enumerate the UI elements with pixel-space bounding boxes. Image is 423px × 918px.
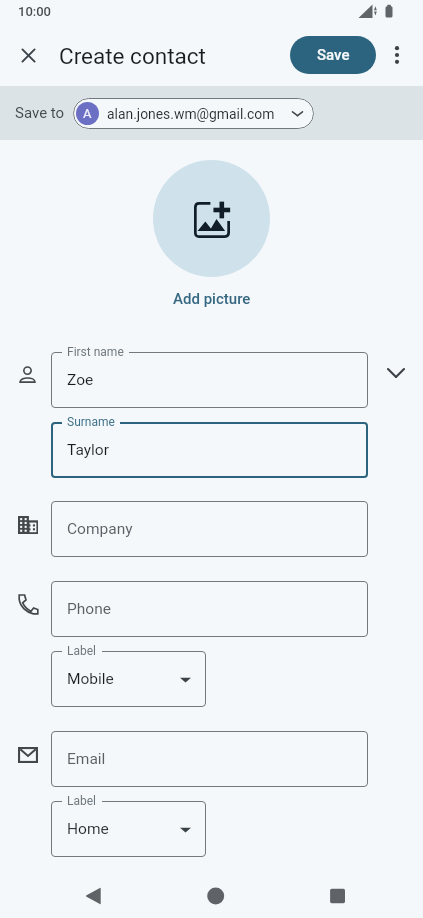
button[interactable]: Add picture (173, 290, 251, 308)
button[interactable]: More options (378, 36, 416, 74)
staticText: First name (67, 345, 124, 359)
staticText: Surname (67, 415, 115, 429)
button[interactable]: Expand name fields (377, 354, 415, 392)
staticText: Save to (15, 104, 65, 122)
button[interactable]: Back (72, 870, 116, 918)
staticText: Home (67, 820, 109, 838)
button[interactable]: A (73, 98, 314, 129)
button[interactable] (51, 651, 206, 707)
staticText: Zoe (67, 371, 94, 389)
staticText: alan.jones.wm@gmail.com (107, 106, 275, 122)
button[interactable]: Close (9, 36, 47, 74)
staticText: Label (67, 794, 97, 808)
staticText: A (83, 106, 92, 121)
staticText: Label (67, 644, 97, 658)
button[interactable]: Add picture (153, 160, 270, 277)
staticText: 10:00 (18, 4, 52, 19)
staticText: Save (317, 46, 350, 64)
staticText: Company (67, 520, 133, 538)
staticText: Email (67, 750, 106, 768)
button[interactable] (51, 801, 206, 857)
staticText: Taylor (67, 441, 109, 459)
button[interactable]: Save (290, 36, 376, 74)
staticText: Phone (67, 600, 111, 618)
staticText: Mobile (67, 670, 114, 688)
button[interactable] (51, 422, 368, 478)
button[interactable] (51, 581, 368, 637)
button[interactable]: Recent apps (316, 870, 360, 918)
button[interactable] (51, 731, 368, 787)
button[interactable] (51, 352, 368, 408)
staticText: Create contact (59, 43, 206, 69)
button[interactable]: Home (194, 870, 238, 918)
button[interactable] (51, 501, 368, 557)
